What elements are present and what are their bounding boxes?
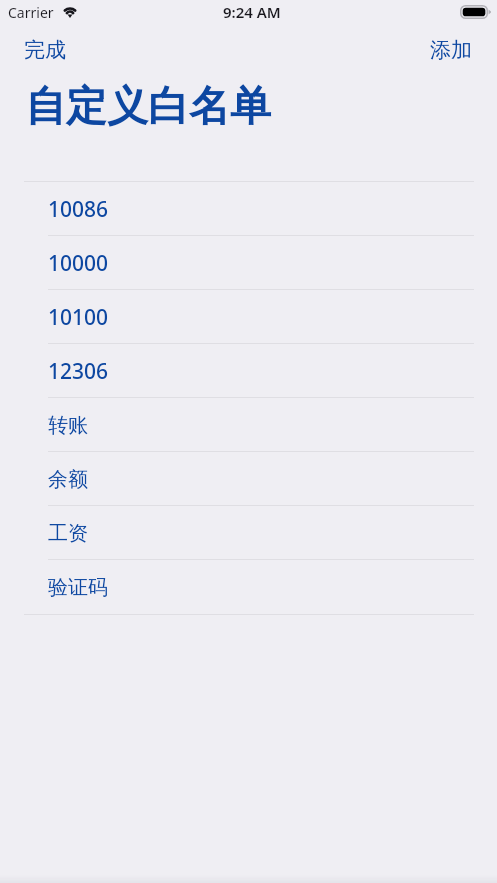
- staticText: 10000: [48, 249, 109, 278]
- button[interactable]: 转账: [0, 398, 497, 452]
- button[interactable]: 10086: [0, 182, 497, 236]
- staticText: 验证码: [48, 575, 108, 600]
- staticText: 转账: [48, 413, 88, 438]
- other: Battery full: [460, 5, 491, 19]
- staticText: 自定义白名单: [25, 81, 271, 133]
- other: Wi-Fi signal: [61, 6, 79, 19]
- staticText: 工资: [48, 521, 88, 546]
- button[interactable]: 余额: [0, 452, 497, 506]
- staticText: 余额: [48, 467, 88, 492]
- button[interactable]: 10100: [0, 290, 497, 344]
- staticText: 完成: [24, 37, 66, 63]
- button[interactable]: 完成: [0, 29, 86, 71]
- button[interactable]: 工资: [0, 506, 497, 560]
- staticText: 12306: [48, 357, 109, 386]
- button[interactable]: 12306: [0, 344, 497, 398]
- staticText: 9:24 AM: [223, 2, 281, 22]
- staticText: 10100: [48, 303, 109, 332]
- staticText: Carrier: [8, 3, 54, 22]
- button[interactable]: 验证码: [0, 560, 497, 614]
- button[interactable]: 10000: [0, 236, 497, 290]
- staticText: 添加: [430, 37, 472, 63]
- button[interactable]: 添加: [410, 29, 497, 71]
- staticText: 10086: [48, 195, 109, 224]
